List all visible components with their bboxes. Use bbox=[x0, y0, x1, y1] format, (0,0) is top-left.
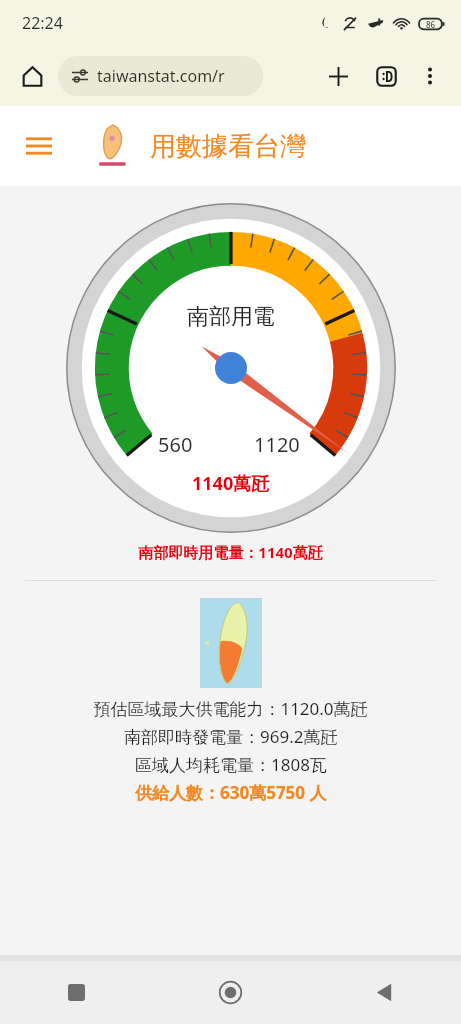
staticText: 86 bbox=[426, 19, 436, 30]
staticText: 南部即時發電量：969.2萬瓩 bbox=[124, 725, 338, 748]
button[interactable]: More options bbox=[413, 59, 447, 93]
staticText: 22:24 bbox=[22, 12, 63, 34]
button[interactable]: Home bbox=[14, 58, 50, 94]
staticText: 用數據看台灣 bbox=[150, 130, 306, 163]
staticText: 預估區域最大供電能力：1120.0萬瓩 bbox=[93, 697, 368, 720]
staticText: 供給人數：630萬5750 人 bbox=[135, 781, 327, 804]
button[interactable]: Recent apps bbox=[0, 961, 153, 1024]
staticText: 區域人均耗電量：1808瓦 bbox=[135, 753, 327, 776]
staticText: 南部用電 bbox=[187, 303, 275, 331]
button[interactable]: Menu bbox=[22, 129, 56, 163]
button[interactable]: New tab bbox=[321, 59, 355, 93]
staticText: 南部即時用電量：1140萬瓩 bbox=[138, 542, 323, 562]
button[interactable]: Home bbox=[153, 961, 307, 1024]
staticText: 1120 bbox=[254, 431, 300, 458]
button[interactable]: Back bbox=[307, 961, 461, 1024]
staticText: taiwanstat.com/r bbox=[97, 65, 225, 87]
button[interactable]: Tabs bbox=[369, 59, 403, 93]
staticText: 560 bbox=[158, 431, 193, 458]
staticText: 1140萬瓩 bbox=[192, 471, 270, 496]
button[interactable]: taiwanstat.com/r bbox=[58, 56, 263, 96]
